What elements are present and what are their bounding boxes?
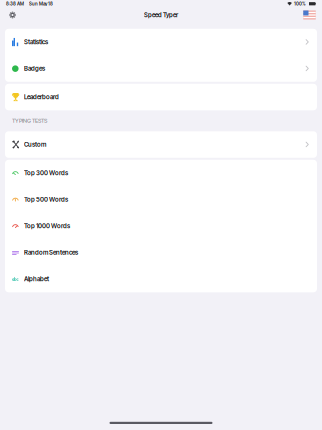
staticText: Random Sentences: [24, 249, 78, 256]
button[interactable]: Language: [302, 8, 317, 21]
staticText: 100%: [294, 1, 306, 6]
staticText: Speed Typer: [144, 11, 178, 19]
staticText: Sun May 18: [29, 1, 53, 6]
staticText: Statistics: [24, 38, 48, 46]
button[interactable]: Leaderboard: [5, 84, 317, 110]
staticText: Top 1000 Words: [24, 222, 70, 230]
staticText: Top 300 Words: [24, 169, 68, 177]
button[interactable]: Custom: [5, 131, 317, 158]
button[interactable]: Badges: [5, 55, 317, 82]
button[interactable]: Top 300 Words: [5, 160, 317, 186]
staticText: Top 500 Words: [24, 196, 68, 203]
button[interactable]: Settings: [6, 8, 19, 21]
button[interactable]: Random Sentences: [5, 239, 317, 266]
staticText: Custom: [24, 141, 46, 148]
button[interactable]: Statistics: [5, 29, 317, 55]
button[interactable]: Top 1000 Words: [5, 213, 317, 239]
staticText: 8:38 AM: [6, 1, 24, 6]
button[interactable]: Alphabet: [5, 266, 317, 292]
staticText: Badges: [24, 65, 45, 72]
staticText: Leaderboard: [24, 93, 59, 101]
staticText: TYPING TESTS: [12, 117, 47, 124]
staticText: Alphabet: [24, 275, 49, 283]
button[interactable]: Top 500 Words: [5, 186, 317, 213]
